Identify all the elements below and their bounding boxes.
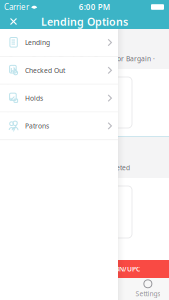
button[interactable]: TAP TO SCAN ISBN/UPC bbox=[0, 260, 169, 278]
staticText: Holds bbox=[25, 94, 43, 103]
staticText: Lending bbox=[25, 38, 50, 47]
button[interactable]: Settings bbox=[127, 278, 169, 300]
button[interactable]: Lending bbox=[0, 29, 118, 57]
button[interactable]: Patrons bbox=[0, 112, 118, 140]
button[interactable]: Close bbox=[0, 14, 23, 29]
button[interactable]: Holds bbox=[0, 85, 118, 112]
staticText: Patrons bbox=[25, 121, 49, 130]
button[interactable]: Checked Out bbox=[0, 57, 118, 85]
staticText: TAP TO SCAN ISBN/UPC bbox=[66, 265, 140, 273]
staticText: Scan a Book to Check In or Completed bbox=[9, 163, 130, 172]
staticText: Carrier bbox=[4, 2, 29, 12]
staticText: 6:00 PM bbox=[79, 2, 110, 12]
button[interactable]: Holds bbox=[84, 278, 127, 300]
staticText: Scan a Book to Check Out, Renew or Barga… bbox=[9, 54, 155, 63]
staticText: Checked Out bbox=[25, 66, 65, 75]
staticText bbox=[29, 2, 31, 12]
staticText: Settings bbox=[135, 289, 160, 298]
staticText: Lending Options bbox=[41, 14, 128, 29]
